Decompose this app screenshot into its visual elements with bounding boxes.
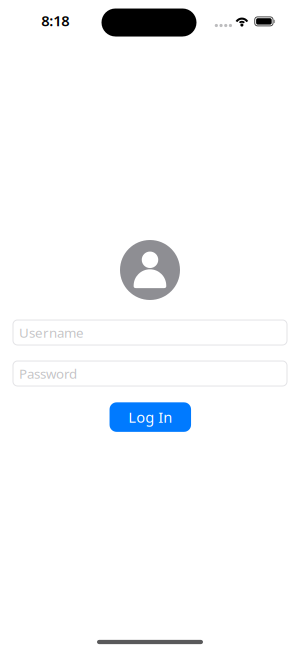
button[interactable]: Password — [13, 361, 287, 386]
staticText: Username — [19, 324, 84, 341]
staticText: Log In — [128, 407, 172, 427]
staticText: 8:18 — [41, 11, 69, 30]
button[interactable]: Username — [13, 320, 287, 345]
staticText: Password — [19, 365, 77, 382]
button[interactable]: Log In — [110, 402, 191, 432]
